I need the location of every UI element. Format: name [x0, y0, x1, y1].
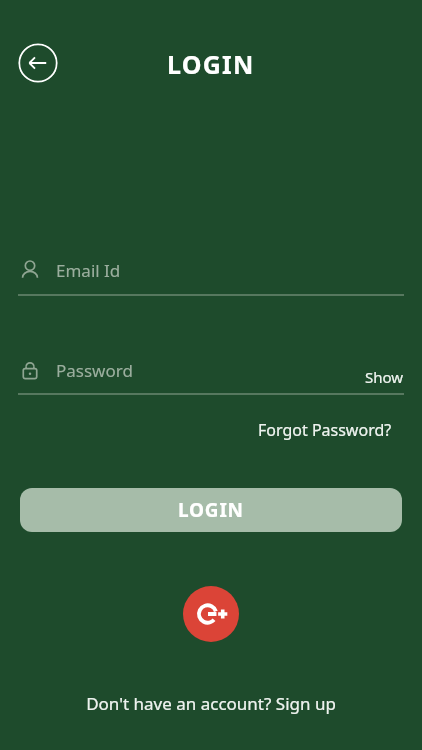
button[interactable]: LOGIN [20, 488, 402, 532]
staticText: Show [365, 367, 404, 387]
button[interactable]: Email Id [18, 258, 404, 296]
staticText: Forgot Password? [258, 419, 392, 441]
staticText: Don't have an account? Sign up [86, 692, 336, 715]
button[interactable]: Sign in with Google [183, 586, 239, 642]
staticText: Email Id [56, 259, 121, 282]
staticText: LOGIN [178, 497, 244, 523]
button[interactable]: Forgot Password? [258, 419, 392, 441]
staticText: LOGIN [167, 47, 255, 81]
staticText: Password [56, 359, 133, 382]
button[interactable]: Back [18, 43, 58, 83]
button[interactable]: Don't have an account? Sign up [86, 692, 336, 715]
button[interactable]: Show [365, 367, 404, 387]
button[interactable]: Password [18, 358, 404, 382]
